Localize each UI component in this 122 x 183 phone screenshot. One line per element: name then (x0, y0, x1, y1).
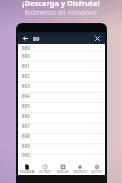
button[interactable]: 897 (18, 121, 105, 131)
staticText: 897 (22, 123, 30, 129)
staticText: 892 (22, 73, 30, 79)
button[interactable]: 900 (18, 151, 105, 159)
button[interactable]: Back (21, 34, 30, 43)
button[interactable]: DESCARGAR (18, 159, 36, 175)
staticText: 889 (22, 45, 30, 51)
staticText: 900 (22, 152, 30, 158)
staticText: 899 (22, 143, 30, 149)
button[interactable]: AGREGAR (54, 159, 71, 175)
staticText: FAVORITOS (73, 170, 87, 174)
staticText: 89 (33, 35, 40, 42)
staticText: 894 (22, 93, 30, 99)
staticText: 895 (22, 103, 30, 109)
button[interactable]: 894 (18, 91, 105, 101)
staticText: 898 (22, 133, 30, 139)
button[interactable]: FAVORITOS (71, 159, 88, 175)
staticText: 890 (22, 53, 30, 59)
button[interactable]: 899 (18, 141, 105, 151)
staticText: 893 (22, 83, 30, 89)
staticText: 891 (22, 63, 30, 69)
button[interactable]: 893 (18, 81, 105, 91)
staticText: AJUSTES (91, 170, 102, 174)
button[interactable]: RECIENTE (36, 159, 54, 175)
button[interactable]: 890 (18, 51, 105, 61)
staticText: DESCARGAR (20, 170, 35, 174)
button[interactable]: 889 (18, 44, 105, 51)
button[interactable]: 892 (18, 71, 105, 81)
staticText: 896 (22, 113, 30, 119)
button[interactable]: 891 (18, 61, 105, 71)
button[interactable]: 895 (18, 101, 105, 111)
staticText: Números en romanos (25, 8, 97, 18)
staticText: ¡Descarga y Disfruta! (22, 0, 100, 8)
staticText: RECIENTE (39, 170, 51, 174)
button[interactable]: AJUSTES (88, 159, 105, 175)
button[interactable]: 896 (18, 111, 105, 121)
staticText: AGREGAR (57, 170, 69, 174)
button[interactable]: Close (93, 34, 102, 43)
button[interactable]: 898 (18, 131, 105, 141)
